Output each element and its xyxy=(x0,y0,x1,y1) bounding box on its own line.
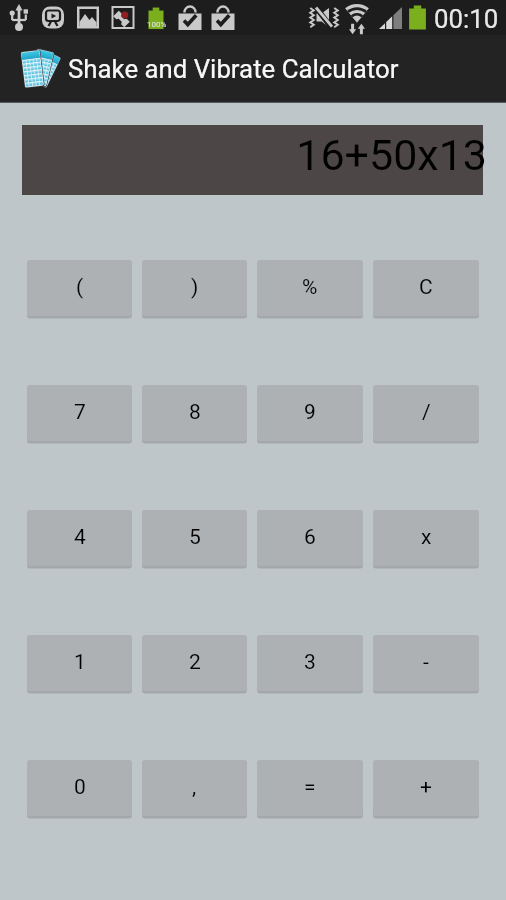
staticText: 6 xyxy=(304,525,316,550)
staticText: + xyxy=(420,775,432,800)
button[interactable]: 9 xyxy=(257,385,363,441)
button[interactable]: 5 xyxy=(142,510,247,566)
staticText: 4 xyxy=(74,525,86,550)
staticText: ) xyxy=(191,275,199,300)
staticText: 5 xyxy=(189,525,201,550)
staticText: 0 xyxy=(74,775,86,800)
button[interactable]: = xyxy=(257,760,363,816)
button[interactable]: + xyxy=(373,760,479,816)
staticText: 3 xyxy=(304,650,316,675)
staticText: 1 xyxy=(74,650,86,675)
button[interactable]: Shake and Vibrate Calculator app icon xyxy=(0,35,506,101)
staticText: , xyxy=(192,775,197,800)
button[interactable]: 7 xyxy=(27,385,132,441)
button[interactable]: ( xyxy=(27,260,132,316)
button[interactable]: C xyxy=(373,260,479,316)
staticText: ( xyxy=(76,275,84,300)
button[interactable]: ) xyxy=(142,260,247,316)
staticText: C xyxy=(419,275,433,300)
staticText: 00:10 xyxy=(434,4,499,34)
staticText: % xyxy=(302,275,318,300)
button[interactable]: , xyxy=(142,760,247,816)
button[interactable]: 1 xyxy=(27,635,132,691)
staticText: = xyxy=(304,775,316,800)
button[interactable]: 6 xyxy=(257,510,363,566)
button[interactable]: 8 xyxy=(142,385,247,441)
button[interactable]: 2 xyxy=(142,635,247,691)
other: Shake and Vibrate Calculator app icon xyxy=(16,47,58,89)
staticText: 100% xyxy=(147,20,167,29)
button[interactable]: 4 xyxy=(27,510,132,566)
button[interactable]: / xyxy=(373,385,479,441)
staticText: x xyxy=(421,525,432,550)
button[interactable]: - xyxy=(373,635,479,691)
staticText: 9 xyxy=(304,400,316,425)
staticText: 2 xyxy=(189,650,201,675)
button[interactable]: 16+50x13 xyxy=(22,125,483,195)
button[interactable]: % xyxy=(257,260,363,316)
button[interactable]: 0 xyxy=(27,760,132,816)
staticText: 8 xyxy=(189,400,201,425)
staticText: 16+50x13 xyxy=(296,130,487,180)
staticText: Shake and Vibrate Calculator xyxy=(68,54,399,84)
staticText: - xyxy=(423,650,429,675)
button[interactable]: 3 xyxy=(257,635,363,691)
staticText: / xyxy=(422,400,431,425)
button[interactable]: x xyxy=(373,510,479,566)
staticText: 7 xyxy=(74,400,86,425)
